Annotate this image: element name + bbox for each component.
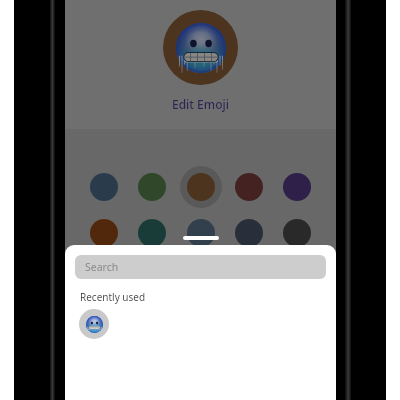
button[interactable]: Edit Emoji (172, 96, 229, 112)
button[interactable] (83, 212, 125, 254)
button[interactable] (228, 166, 270, 208)
staticText: Search (85, 260, 119, 274)
button[interactable]: Profile emoji (163, 10, 238, 85)
staticText: Recently used (80, 290, 146, 304)
button[interactable]: Search (75, 255, 326, 279)
button[interactable] (131, 166, 173, 208)
button[interactable] (83, 166, 125, 208)
button[interactable] (276, 166, 318, 208)
button[interactable] (276, 212, 318, 254)
button[interactable] (180, 212, 222, 254)
button[interactable] (131, 212, 173, 254)
button[interactable]: Cold face emoji (79, 309, 109, 339)
button[interactable] (180, 166, 222, 208)
button[interactable] (228, 212, 270, 254)
